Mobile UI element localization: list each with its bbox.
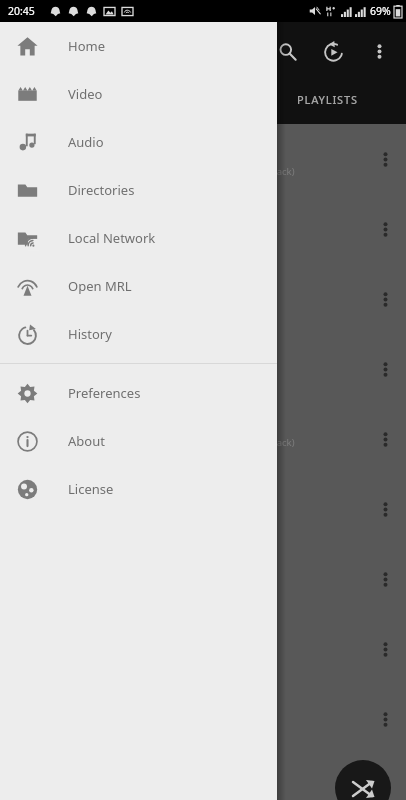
button[interactable]: Audio: [0, 118, 277, 166]
staticText: Directories: [68, 181, 135, 199]
staticText: Open MRL: [68, 277, 132, 295]
button[interactable]: archive.com: [0, 684, 406, 754]
button[interactable]: Item options: [364, 348, 406, 390]
button[interactable]: Item options: [364, 208, 406, 250]
button[interactable]: Marvel_Spider-Man_: [0, 334, 406, 404]
button[interactable]: Item options: [0, 614, 406, 684]
button[interactable]: Local Network: [0, 214, 277, 262]
button[interactable]: Shuffle all: [335, 760, 391, 800]
staticText: About: [68, 432, 105, 450]
staticText: (Original Motion Picture Soundtrack): [132, 436, 295, 449]
button[interactable]: Home: [0, 22, 277, 70]
button[interactable]: Item options: [0, 264, 406, 334]
button[interactable]: History: [0, 310, 277, 358]
staticText: History: [68, 325, 112, 343]
staticText: Audio: [68, 133, 104, 151]
button[interactable]: Roméo et Juliette: [0, 124, 406, 194]
staticText: PLAYLISTS: [297, 92, 358, 107]
button[interactable]: About: [0, 417, 277, 465]
staticText: 20:45: [8, 4, 35, 18]
button[interactable]: Item options: [0, 194, 406, 264]
button[interactable]: More options: [356, 28, 402, 74]
button[interactable]: Search: [264, 28, 310, 74]
button[interactable]: Open MRL: [0, 262, 277, 310]
staticText: Marvel_Spider-Man_: [132, 360, 266, 379]
staticText: Local Network: [68, 229, 156, 247]
staticText: 69%: [370, 4, 391, 18]
staticText: License: [68, 480, 114, 498]
button[interactable]: Item options: [364, 558, 406, 600]
button[interactable]: Batsman_The_G: [0, 474, 406, 544]
button[interactable]: Samba: [0, 544, 406, 614]
button[interactable]: Video: [0, 70, 277, 118]
button[interactable]: Preferences: [0, 369, 277, 417]
button[interactable]: License: [0, 465, 277, 513]
staticText: Video: [68, 85, 103, 103]
button[interactable]: (Original Motion Picture Soundtrack): [0, 404, 406, 474]
button[interactable]: Item options: [364, 488, 406, 530]
staticText: (Original Motion Picture Soundtrack): [132, 165, 295, 178]
staticText: Home: [68, 37, 105, 55]
button[interactable]: Directories: [0, 166, 277, 214]
button[interactable]: Item options: [364, 418, 406, 460]
button[interactable]: Item options: [364, 628, 406, 670]
button[interactable]: Resume playback: [310, 28, 356, 74]
button[interactable]: Item options: [364, 278, 406, 320]
button[interactable]: Item options: [364, 698, 406, 740]
button[interactable]: Item options: [364, 138, 406, 180]
staticText: Preferences: [68, 384, 141, 402]
